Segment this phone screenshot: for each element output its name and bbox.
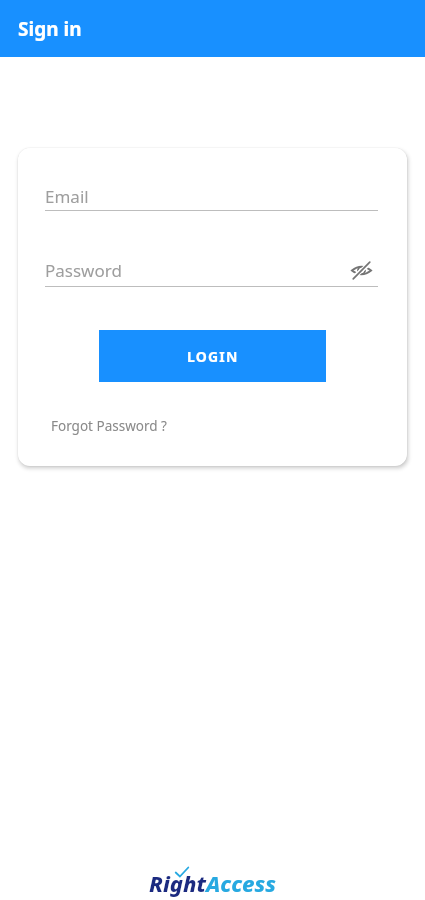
button[interactable]: Forgot Password ? xyxy=(51,412,167,440)
staticText: Access xyxy=(206,868,276,898)
staticText: Password xyxy=(45,259,122,282)
button[interactable]: LOGIN xyxy=(99,330,326,382)
staticText: Right xyxy=(149,868,206,898)
button[interactable]: Show password xyxy=(343,252,379,288)
staticText: Email xyxy=(45,185,89,208)
button[interactable]: Email xyxy=(45,181,378,211)
staticText: Sign in xyxy=(18,16,82,42)
button[interactable]: Password xyxy=(45,255,378,285)
staticText: LOGIN xyxy=(187,347,239,366)
staticText: Forgot Password ? xyxy=(51,417,167,435)
